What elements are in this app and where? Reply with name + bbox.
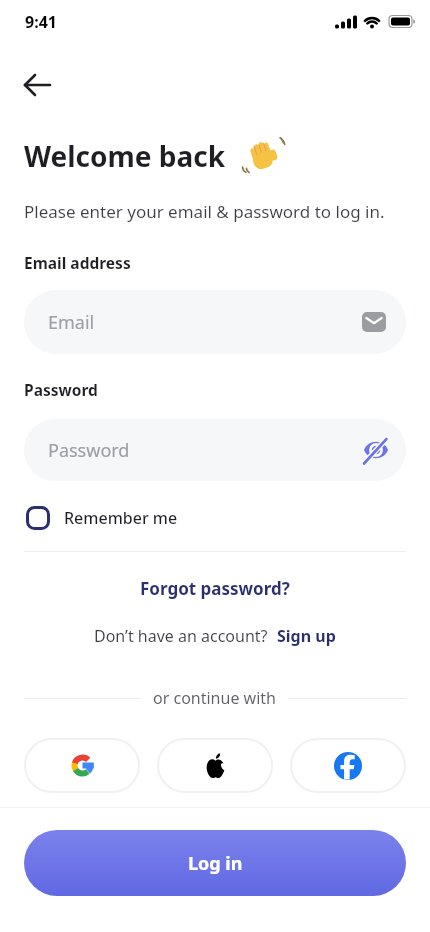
staticText: Welcome back (24, 137, 226, 175)
staticText: Password (24, 379, 98, 400)
button[interactable]: Sign up (277, 625, 336, 647)
staticText: or continue with (153, 687, 276, 709)
button[interactable] (14, 61, 62, 109)
button[interactable]: Password (24, 419, 406, 481)
staticText: 9:41 (25, 11, 57, 33)
staticText: Log in (188, 851, 243, 876)
staticText: Email (48, 310, 95, 335)
staticText: Forgot password? (140, 577, 290, 600)
staticText: Don’t have an account? (94, 625, 268, 647)
staticText: Remember me (64, 507, 178, 529)
button[interactable]: Log in (24, 830, 406, 896)
staticText: Sign up (277, 625, 336, 647)
staticText: Password (48, 438, 130, 463)
button[interactable] (24, 738, 140, 793)
button[interactable]: Remember me (26, 506, 178, 530)
staticText: Please enter your email & password to lo… (24, 200, 385, 223)
button[interactable]: Email (24, 290, 406, 354)
button[interactable]: Forgot password? (0, 577, 430, 600)
button[interactable] (290, 738, 406, 793)
button[interactable] (157, 738, 273, 793)
staticText: Email address (24, 252, 131, 273)
